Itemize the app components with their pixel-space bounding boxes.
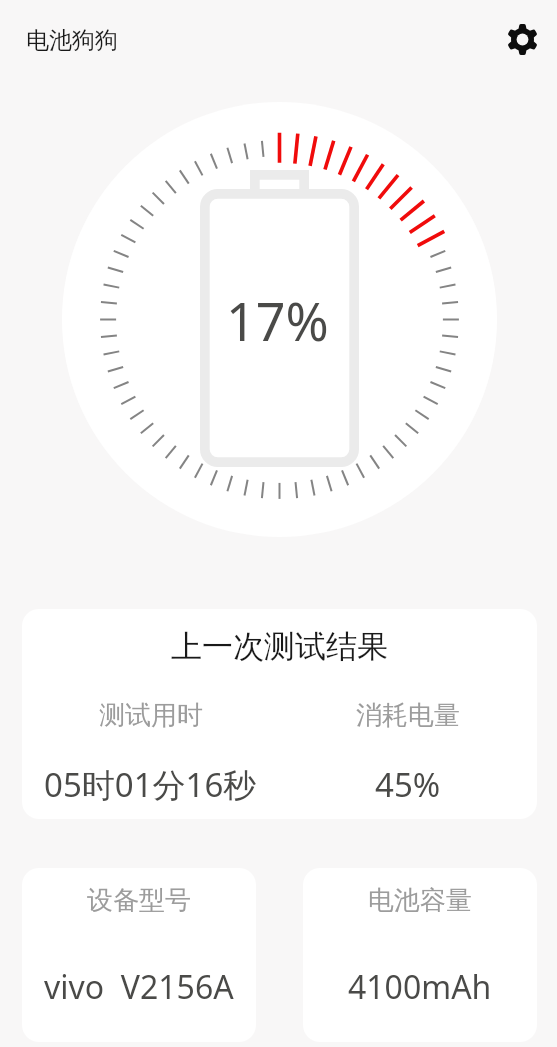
button[interactable]: 上一次测试结果: [22, 609, 537, 819]
staticText: 4100mAh: [348, 965, 492, 1009]
button[interactable]: 电池容量: [303, 868, 537, 1042]
staticText: 电池狗狗: [26, 26, 118, 55]
button[interactable]: Settings: [495, 12, 549, 66]
staticText: 测试用时: [99, 699, 203, 732]
button[interactable]: 电池狗狗: [14, 20, 130, 61]
staticText: 45%: [375, 762, 441, 807]
staticText: 05时01分16秒: [44, 762, 257, 807]
staticText: vivo V2156A: [44, 965, 234, 1009]
button[interactable]: 设备型号: [22, 868, 256, 1042]
staticText: 电池容量: [368, 884, 472, 917]
staticText: 上一次测试结果: [22, 627, 537, 666]
staticText: 17%: [226, 285, 329, 356]
staticText: 消耗电量: [356, 699, 460, 732]
staticText: 设备型号: [87, 884, 191, 917]
